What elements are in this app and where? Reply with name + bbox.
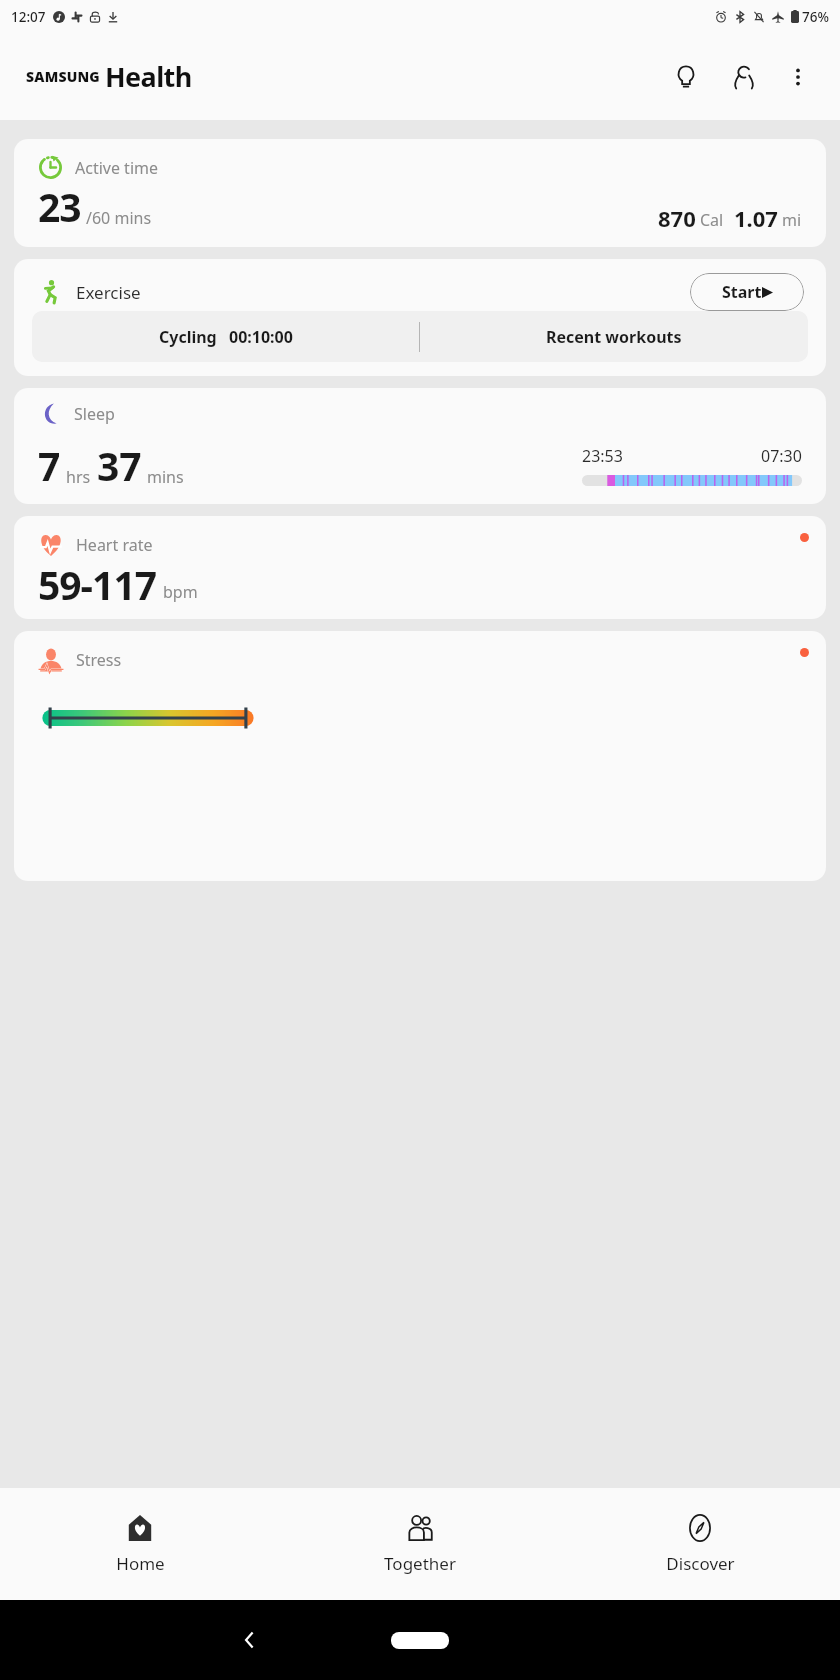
staticText: Stress <box>76 649 122 671</box>
staticText: Discover <box>666 1552 735 1575</box>
staticText: 59-117 <box>38 558 157 607</box>
button[interactable]: Cycling <box>32 311 419 362</box>
staticText: 7 <box>38 439 61 492</box>
staticText: Recent workouts <box>546 326 682 348</box>
staticText: Together <box>384 1552 456 1575</box>
staticText: Cycling <box>159 326 217 348</box>
staticText: Cal <box>700 209 724 231</box>
staticText: 00:10:00 <box>229 326 293 348</box>
button[interactable]: Start <box>690 273 804 311</box>
staticText: 870 <box>658 203 696 233</box>
staticText: mins <box>147 466 184 488</box>
staticText: 1.07 <box>734 203 778 233</box>
button[interactable]: Profile <box>722 55 766 99</box>
button[interactable]: Together <box>280 1488 560 1600</box>
staticText: bpm <box>163 581 198 603</box>
button[interactable]: Home <box>0 1488 280 1600</box>
staticText: Exercise <box>76 281 141 304</box>
button[interactable]: Back <box>227 1617 273 1663</box>
staticText: SAMSUNG <box>26 67 100 86</box>
button[interactable]: Tips <box>664 55 708 99</box>
button[interactable]: Heart rate <box>14 516 826 619</box>
button[interactable]: Home <box>391 1632 449 1649</box>
staticText: 12:07 <box>11 8 46 26</box>
button[interactable]: Sleep <box>14 388 826 504</box>
staticText: /60 mins <box>86 207 152 229</box>
button[interactable]: Active time <box>14 139 826 247</box>
staticText: 23:53 <box>582 445 623 467</box>
staticText: mi <box>782 209 802 231</box>
staticText: 76% <box>802 8 829 26</box>
button[interactable]: More options <box>776 55 820 99</box>
button[interactable]: Exercise <box>14 259 826 376</box>
staticText: Sleep <box>74 403 115 425</box>
staticText: 07:30 <box>761 445 802 467</box>
staticText: 37 <box>97 439 142 492</box>
staticText: Active time <box>75 157 159 179</box>
staticText: Heart rate <box>76 534 153 556</box>
staticText: Home <box>116 1552 165 1575</box>
button[interactable]: Discover <box>560 1488 840 1600</box>
staticText: hrs <box>66 466 91 488</box>
staticText: Health <box>105 58 192 95</box>
staticText: 23 <box>38 180 81 233</box>
button[interactable]: Stress <box>14 631 826 881</box>
staticText: Start <box>722 281 762 303</box>
button[interactable]: Recent workouts <box>420 311 808 362</box>
